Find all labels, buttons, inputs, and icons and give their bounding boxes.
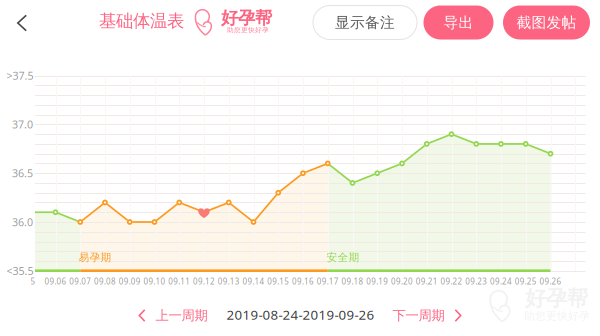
staticText: 09.07 [69, 276, 91, 287]
staticText: 导出 [443, 13, 473, 31]
staticText: 上一周期 [155, 307, 207, 324]
staticText: 截图发帖 [516, 13, 576, 31]
button[interactable]: Back [0, 1, 44, 45]
staticText: 09.10 [143, 276, 165, 287]
staticText: 09.09 [119, 276, 141, 287]
staticText: 09.08 [94, 276, 116, 287]
button[interactable]: 截图发帖 [503, 5, 590, 39]
staticText: 09.11 [168, 276, 190, 287]
staticText: 助您更快好孕 [227, 26, 269, 34]
staticText: 5 [30, 276, 35, 287]
staticText: 下一周期 [392, 307, 444, 324]
staticText: 09.21 [416, 276, 438, 287]
staticText: 09.19 [366, 276, 388, 287]
staticText: 基础体温表 [99, 10, 184, 32]
staticText: <35.5 [6, 264, 33, 278]
button[interactable]: 下一周期 [386, 300, 467, 331]
staticText: 37.0 [12, 117, 33, 131]
staticText: 09.06 [44, 276, 66, 287]
staticText: 09.25 [515, 276, 537, 287]
button[interactable]: 导出 [423, 5, 493, 39]
staticText: 09.16 [292, 276, 314, 287]
staticText: 09.18 [341, 276, 363, 287]
staticText: 09.12 [193, 276, 215, 287]
staticText: 好孕帮 [221, 7, 272, 29]
staticText: 09.17 [317, 276, 339, 287]
staticText: 好孕帮 [525, 285, 588, 312]
staticText: 易孕期 [78, 251, 111, 264]
staticText: 2019-08-24-2019-09-26 [226, 306, 374, 323]
staticText: >37.5 [6, 68, 33, 83]
staticText: 09.23 [465, 276, 487, 287]
staticText: 36.5 [12, 166, 33, 180]
staticText: 09.22 [440, 276, 462, 287]
staticText: 09.24 [490, 276, 512, 287]
staticText: 09.13 [218, 276, 240, 287]
staticText: 36.0 [12, 215, 33, 229]
staticText: 09.26 [539, 276, 561, 287]
staticText: 助您更快好孕 [524, 309, 590, 322]
staticText: 09.20 [391, 276, 413, 287]
staticText: 安全期 [326, 251, 359, 264]
staticText: 显示备注 [335, 13, 395, 31]
staticText: 09.15 [267, 276, 289, 287]
staticText: 09.14 [242, 276, 264, 287]
button[interactable]: 显示备注 [313, 5, 417, 39]
button[interactable]: 上一周期 [132, 300, 213, 331]
